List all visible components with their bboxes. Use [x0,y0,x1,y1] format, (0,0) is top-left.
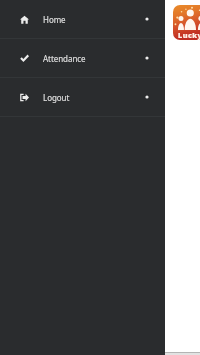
button[interactable]: Attendance [0,39,165,77]
staticText: Logout [43,92,70,103]
staticText: Attendance [43,53,86,64]
staticText: Home [43,14,66,25]
staticText: Lucky [178,30,200,40]
button[interactable]: Logout [0,78,165,116]
button[interactable]: Home [0,0,165,38]
